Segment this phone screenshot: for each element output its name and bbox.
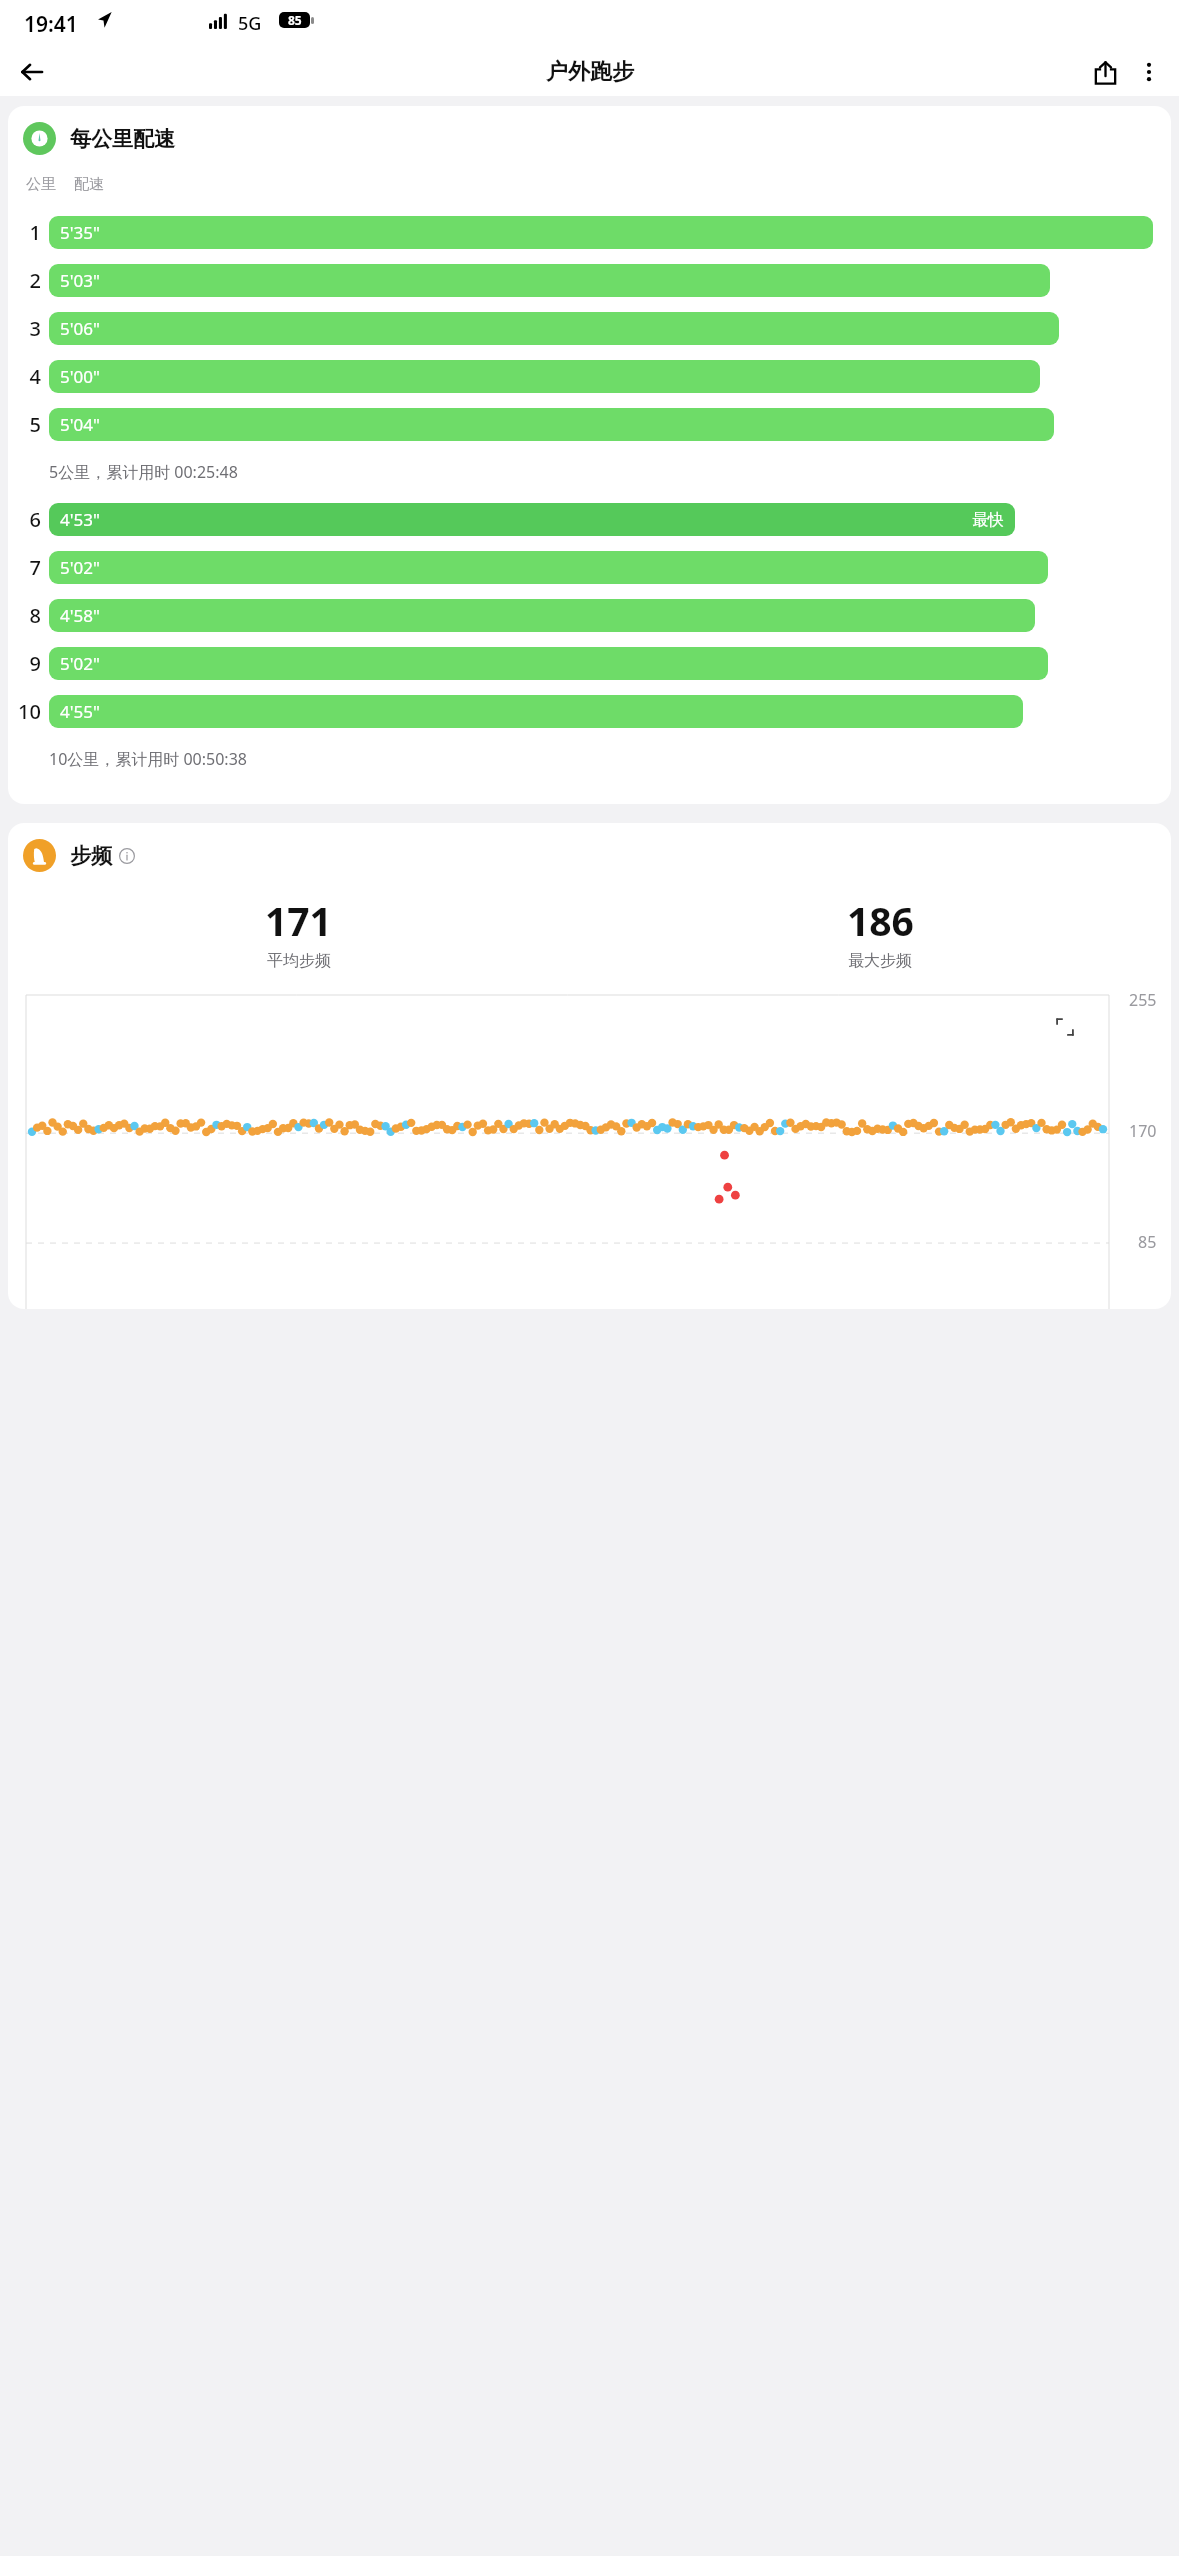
staticText: 2: [29, 267, 41, 294]
staticText: 5公里，累计用时 00:25:48: [49, 461, 238, 483]
button[interactable]: 1: [8, 208, 1171, 256]
staticText: 5'35": [60, 221, 100, 244]
staticText: 19:41: [24, 10, 78, 39]
staticText: 171: [265, 894, 332, 947]
button[interactable]: 3: [8, 304, 1171, 352]
staticText: 7: [29, 554, 41, 581]
staticText: 最大步频: [848, 951, 912, 971]
staticText: 10公里，累计用时 00:50:38: [49, 748, 247, 770]
staticText: 每公里配速: [70, 126, 175, 152]
button[interactable]: More options: [1127, 50, 1171, 94]
staticText: 公里: [26, 175, 56, 194]
staticText: 4'53": [60, 508, 100, 531]
staticText: 最快: [972, 510, 1004, 530]
staticText: 6: [29, 506, 41, 533]
staticText: 5'06": [60, 317, 100, 340]
button[interactable]: 每公里配速: [23, 122, 1171, 155]
staticText: 186: [847, 894, 914, 947]
staticText: 步频: [70, 843, 112, 869]
staticText: 户外跑步: [546, 58, 634, 86]
staticText: 85: [1138, 1231, 1157, 1253]
staticText: 5'03": [60, 269, 100, 292]
staticText: 5'02": [60, 556, 100, 579]
button[interactable]: 8: [8, 591, 1171, 639]
button[interactable]: 10: [8, 687, 1171, 735]
staticText: 85: [288, 12, 302, 28]
staticText: 4: [29, 363, 41, 390]
staticText: 5G: [238, 11, 262, 36]
staticText: 10: [18, 698, 41, 725]
button[interactable]: Back: [8, 48, 56, 96]
staticText: 配速: [74, 175, 104, 194]
staticText: 3: [29, 315, 41, 342]
staticText: 5'00": [60, 365, 100, 388]
staticText: 170: [1129, 1120, 1157, 1142]
staticText: 5'02": [60, 652, 100, 675]
button[interactable]: Expand chart: [1045, 1007, 1085, 1047]
staticText: 255: [1129, 989, 1157, 1011]
staticText: 5'04": [60, 413, 100, 436]
staticText: 4'58": [60, 604, 100, 627]
staticText: 4'55": [60, 700, 100, 723]
button[interactable]: 步频: [23, 839, 1171, 872]
staticText: 8: [29, 602, 41, 629]
staticText: 1: [29, 219, 41, 246]
button[interactable]: 7: [8, 543, 1171, 591]
button[interactable]: 4: [8, 352, 1171, 400]
button[interactable]: 6: [8, 495, 1171, 543]
staticText: 平均步频: [267, 951, 331, 971]
button[interactable]: 5: [8, 400, 1171, 448]
button[interactable]: 2: [8, 256, 1171, 304]
button[interactable]: 9: [8, 639, 1171, 687]
staticText: 5: [29, 411, 41, 438]
button[interactable]: Share: [1083, 50, 1127, 94]
staticText: 9: [29, 650, 41, 677]
